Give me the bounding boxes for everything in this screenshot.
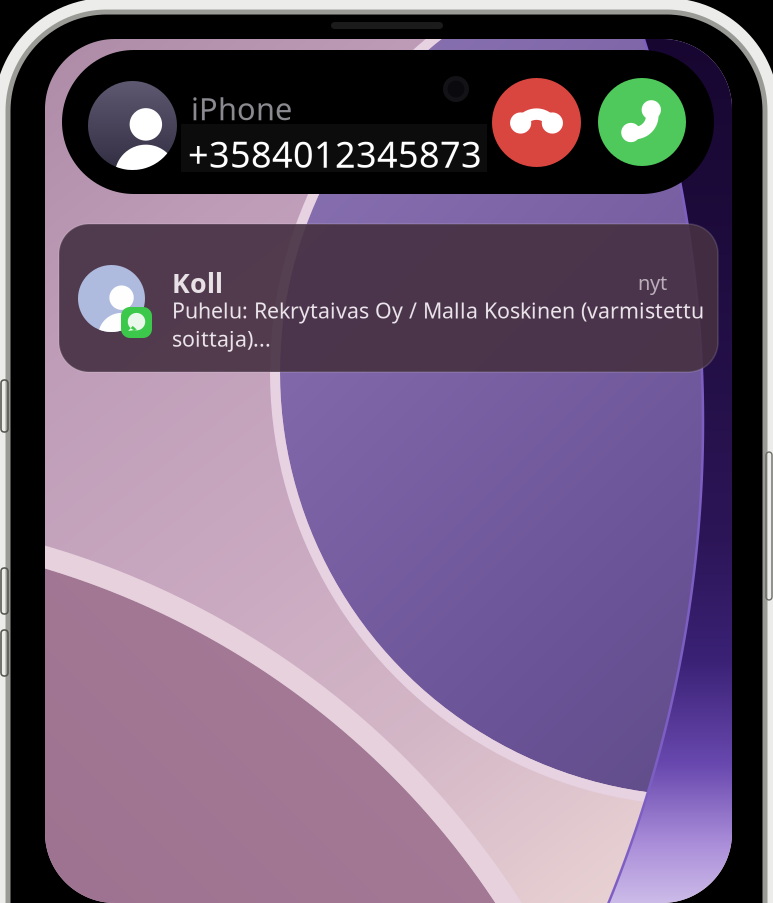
staticText: nyt: [638, 269, 667, 296]
staticText: Koll: [172, 265, 223, 300]
button[interactable]: Accept call: [598, 78, 686, 166]
button[interactable]: Decline call: [492, 78, 581, 167]
staticText: iPhone: [191, 88, 292, 129]
staticText: +3584012345873: [188, 130, 482, 178]
staticText: Puhelu: Rekrytaivas Oy / Malla Koskinen …: [172, 296, 704, 353]
